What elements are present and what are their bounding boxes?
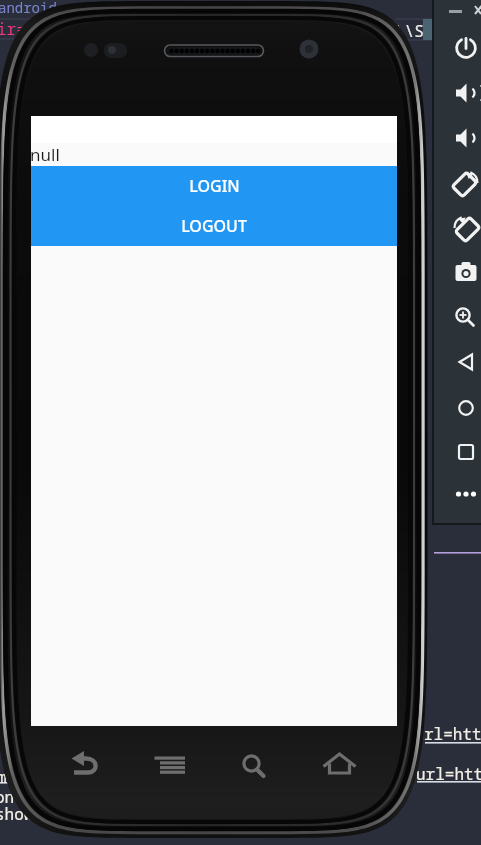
button[interactable]: Volume down	[447, 119, 481, 157]
button[interactable]: LOGOUT	[31, 206, 397, 246]
button[interactable]: Search	[230, 740, 290, 790]
staticText: m	[0, 766, 7, 788]
button[interactable]: Back	[447, 343, 481, 381]
staticText: url=http	[416, 763, 481, 785]
button[interactable]: Power	[447, 29, 481, 67]
button[interactable]: Rotate left	[447, 164, 481, 202]
staticText: rl=http	[424, 723, 481, 745]
button[interactable]: Menu	[145, 740, 205, 790]
staticText: on	[0, 786, 15, 808]
staticText: LOGIN	[189, 175, 240, 197]
button[interactable]: Zoom	[447, 296, 481, 334]
button[interactable]: LOGIN	[31, 166, 397, 206]
staticText: android	[0, 0, 57, 17]
staticText: ir=	[0, 18, 26, 40]
button[interactable]: Back	[60, 740, 120, 790]
button[interactable]: Home	[447, 389, 481, 427]
staticText: LOGOUT	[181, 215, 247, 237]
button[interactable]: More	[447, 475, 481, 513]
staticText: \\S	[395, 20, 424, 42]
button[interactable]: Home	[315, 740, 375, 790]
staticText: null	[30, 143, 60, 166]
staticText: show	[0, 803, 34, 825]
button[interactable]: Overview	[447, 433, 481, 471]
button[interactable]: Rotate right	[447, 209, 481, 247]
button[interactable]: Volume up	[447, 74, 481, 112]
button[interactable]: Screenshot	[447, 253, 481, 291]
